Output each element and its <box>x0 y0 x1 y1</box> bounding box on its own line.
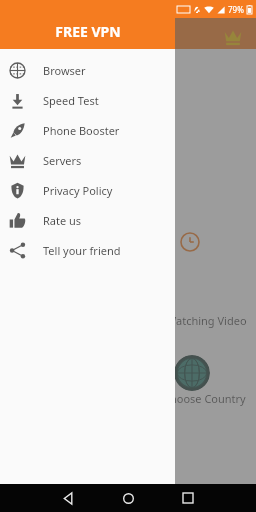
button[interactable]: Phone Booster <box>0 115 175 145</box>
staticText: Rate us <box>43 213 82 228</box>
staticText: FREE VPN <box>55 22 121 41</box>
button[interactable]: Choose Country <box>174 355 210 391</box>
staticText: Speed Test <box>43 93 99 108</box>
staticText: Browser <box>43 63 86 78</box>
button[interactable]: Browser <box>0 55 175 85</box>
staticText: Choose Country <box>163 391 246 406</box>
button[interactable]: Recent apps <box>158 484 218 512</box>
staticText: Servers <box>43 153 82 168</box>
staticText: Phone Booster <box>43 123 120 138</box>
staticText: 79% <box>228 4 244 15</box>
button[interactable]: Speed Test <box>0 85 175 115</box>
staticText: Tell your friend <box>43 243 121 258</box>
button[interactable]: Servers <box>0 145 175 175</box>
staticText: Watching Video <box>166 313 247 328</box>
button[interactable]: Privacy Policy <box>0 175 175 205</box>
button[interactable] <box>175 0 256 484</box>
button[interactable]: Back <box>38 484 98 512</box>
button[interactable]: Home <box>98 484 158 512</box>
button[interactable]: Rate us <box>0 205 175 235</box>
button[interactable]: Premium <box>218 22 248 52</box>
staticText: Privacy Policy <box>43 183 113 198</box>
button[interactable]: Tell your friend <box>0 235 175 265</box>
